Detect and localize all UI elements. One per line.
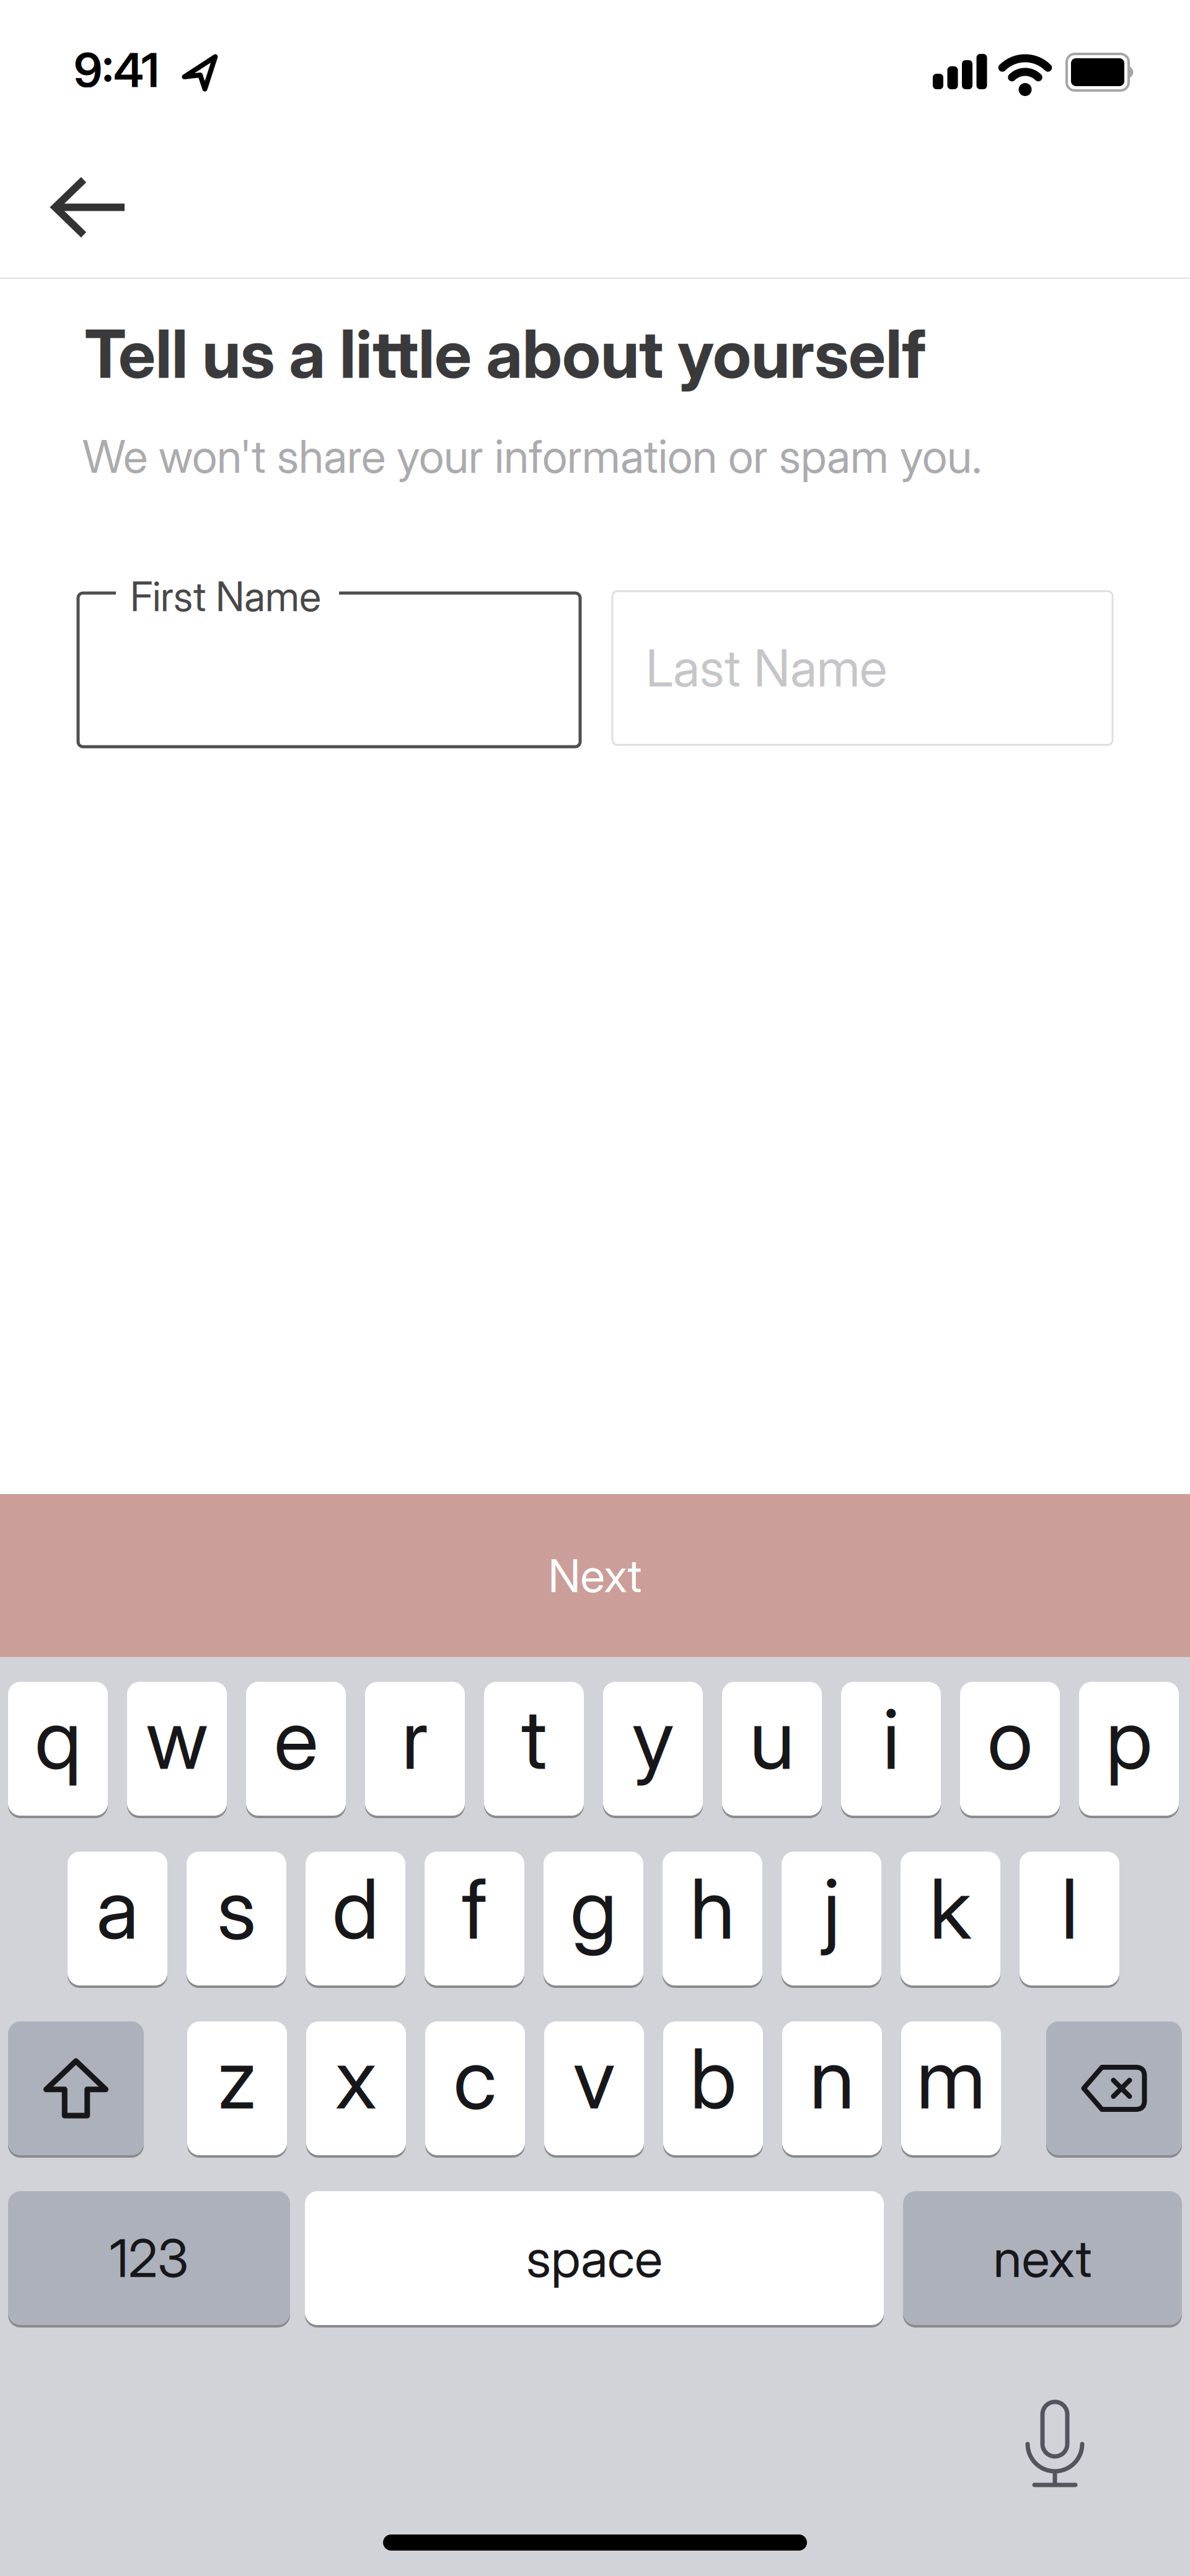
staticText: We won't share your information or spam …: [82, 429, 982, 483]
staticText: c: [453, 2030, 497, 2127]
staticText: Next: [548, 1549, 642, 1602]
button[interactable]: f: [425, 1850, 524, 1987]
staticText: x: [335, 2030, 377, 2127]
button[interactable]: a: [68, 1850, 167, 1987]
button[interactable]: v: [544, 2020, 644, 2156]
button[interactable]: Back: [43, 167, 137, 247]
button[interactable]: k: [901, 1850, 1000, 1987]
staticText: u: [749, 1690, 795, 1788]
button[interactable]: q: [8, 1681, 108, 1817]
staticText: space: [526, 2227, 663, 2289]
button[interactable]: b: [663, 2020, 763, 2156]
staticText: s: [217, 1860, 256, 1957]
staticText: b: [690, 2030, 736, 2127]
staticText: g: [570, 1860, 617, 1957]
button[interactable]: 123: [8, 2190, 290, 2326]
staticText: First Name: [130, 573, 321, 620]
staticText: h: [690, 1860, 735, 1957]
button[interactable]: m: [901, 2020, 1001, 2156]
button[interactable]: x: [306, 2020, 406, 2156]
staticText: z: [217, 2030, 257, 2127]
button[interactable]: i: [841, 1681, 941, 1817]
button[interactable]: w: [127, 1681, 227, 1817]
button[interactable]: e: [246, 1681, 346, 1817]
button[interactable]: Next: [0, 1494, 1190, 1657]
button[interactable]: c: [425, 2020, 525, 2156]
staticText: j: [823, 1860, 840, 1957]
button[interactable]: space: [305, 2190, 884, 2326]
staticText: w: [146, 1690, 208, 1788]
staticText: a: [96, 1860, 139, 1957]
button[interactable]: Shift: [8, 2020, 144, 2156]
button[interactable]: n: [782, 2020, 882, 2156]
button[interactable]: l: [1020, 1850, 1119, 1987]
staticText: t: [521, 1690, 547, 1788]
staticText: k: [929, 1860, 972, 1957]
button[interactable]: First Name: [78, 593, 580, 747]
button[interactable]: h: [663, 1850, 762, 1987]
staticText: Tell us a little about yourself: [84, 315, 927, 393]
staticText: n: [809, 2030, 855, 2127]
staticText: o: [987, 1690, 1033, 1788]
staticText: v: [573, 2030, 615, 2127]
button[interactable]: z: [187, 2020, 287, 2156]
staticText: d: [332, 1860, 379, 1957]
staticText: p: [1106, 1690, 1152, 1788]
button[interactable]: next: [903, 2190, 1182, 2326]
button[interactable]: g: [544, 1850, 643, 1987]
staticText: next: [993, 2227, 1092, 2289]
button[interactable]: u: [722, 1681, 822, 1817]
button[interactable]: Last Name: [612, 591, 1113, 745]
staticText: q: [35, 1690, 81, 1788]
button[interactable]: y: [603, 1681, 703, 1817]
button[interactable]: d: [306, 1850, 405, 1987]
button[interactable]: j: [782, 1850, 881, 1987]
button[interactable]: p: [1079, 1681, 1179, 1817]
button[interactable]: Delete: [1046, 2020, 1182, 2156]
staticText: i: [883, 1690, 899, 1788]
staticText: f: [462, 1860, 487, 1957]
staticText: m: [916, 2030, 986, 2127]
button[interactable]: Dictation: [1009, 2385, 1101, 2506]
staticText: Last Name: [646, 638, 887, 698]
staticText: 123: [110, 2227, 188, 2289]
button[interactable]: r: [365, 1681, 465, 1817]
button[interactable]: s: [187, 1850, 286, 1987]
staticText: y: [632, 1690, 674, 1788]
staticText: r: [402, 1690, 428, 1788]
staticText: 9:41: [74, 42, 159, 98]
staticText: e: [274, 1690, 318, 1788]
staticText: l: [1061, 1860, 1078, 1957]
button[interactable]: o: [960, 1681, 1060, 1817]
button[interactable]: t: [484, 1681, 584, 1817]
